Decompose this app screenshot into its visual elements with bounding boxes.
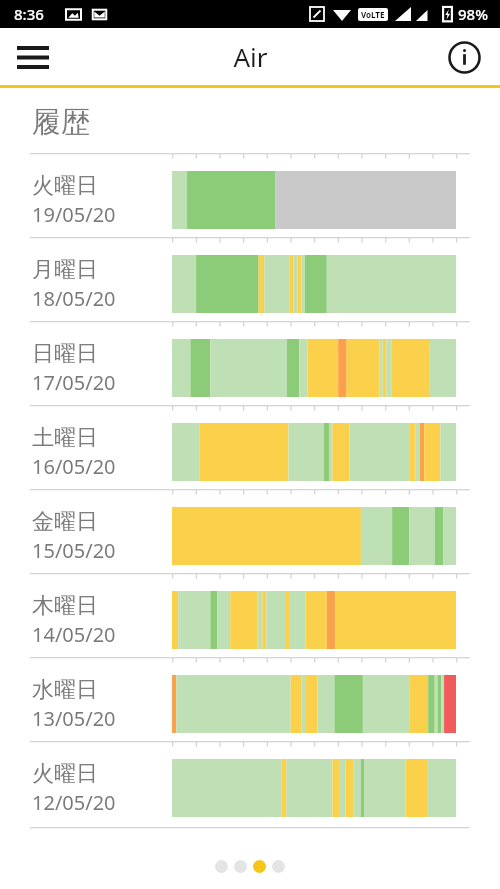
button[interactable]: 金曜日 (0, 489, 500, 573)
staticText: 15/05/20 (32, 537, 116, 564)
staticText: 土曜日 (32, 424, 98, 452)
staticText: 火曜日 (32, 760, 98, 788)
staticText: 履歴 (32, 104, 90, 141)
button[interactable]: 木曜日 (0, 573, 500, 657)
staticText: 水曜日 (32, 676, 98, 704)
button[interactable]: 水曜日 (0, 657, 500, 741)
staticText: 18/05/20 (32, 285, 116, 312)
button[interactable]: Menu (8, 32, 58, 82)
staticText: 12/05/20 (32, 789, 116, 816)
staticText: 日曜日 (32, 340, 98, 368)
staticText: 14/05/20 (32, 621, 116, 648)
button[interactable]: 火曜日 (0, 153, 500, 237)
staticText: 火曜日 (32, 172, 98, 200)
staticText: 13/05/20 (32, 705, 116, 732)
button[interactable]: 日曜日 (0, 321, 500, 405)
staticText: 17/05/20 (32, 369, 116, 396)
button[interactable]: Page 3 (253, 860, 266, 873)
staticText: 月曜日 (32, 256, 98, 284)
staticText: 16/05/20 (32, 453, 116, 480)
staticText: 8:36 (14, 4, 44, 24)
button[interactable]: Page 2 (234, 860, 247, 873)
staticText: 金曜日 (32, 508, 98, 536)
staticText: Air (233, 39, 268, 74)
staticText: 木曜日 (32, 592, 98, 620)
button[interactable]: Info (440, 33, 488, 81)
button[interactable]: Page 1 (215, 860, 228, 873)
staticText: 98% (458, 4, 488, 24)
button[interactable]: 土曜日 (0, 405, 500, 489)
button[interactable]: 月曜日 (0, 237, 500, 321)
staticText: VoLTE (361, 9, 385, 20)
button[interactable]: Page 4 (272, 860, 285, 873)
button[interactable]: 火曜日 (0, 741, 500, 825)
staticText: 19/05/20 (32, 201, 116, 228)
